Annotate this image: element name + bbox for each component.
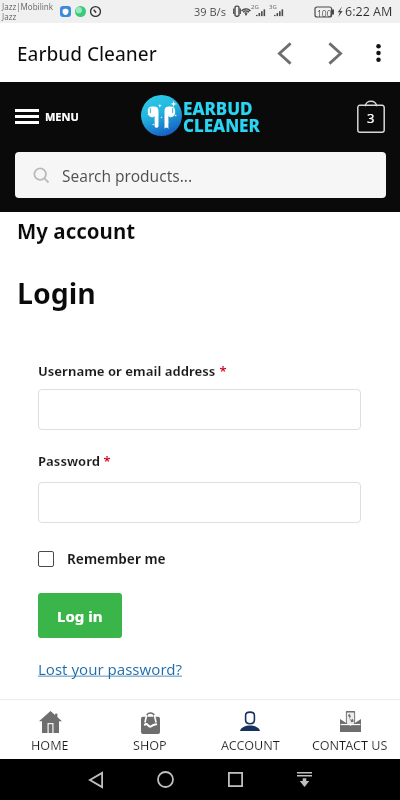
staticText: Search products... [62, 165, 193, 186]
button[interactable]: ACCOUNT [200, 700, 300, 759]
button[interactable]: MENU [15, 109, 79, 124]
staticText: CLEANER [183, 114, 260, 137]
staticText: SHOP [133, 737, 167, 754]
staticText: My account [17, 217, 136, 245]
button[interactable]: Hide navigation bar [282, 759, 326, 800]
staticText: Jazz [2, 11, 17, 22]
button[interactable] [38, 389, 361, 430]
staticText: MENU [45, 109, 79, 124]
staticText: Login [17, 274, 96, 313]
staticText: 6:22 AM [345, 3, 393, 20]
button[interactable]: More options [359, 34, 397, 72]
staticText: 100 [317, 8, 332, 20]
button[interactable] [38, 482, 361, 523]
button[interactable]: Cart, 3 items [352, 98, 389, 135]
staticText: CONTACT US [312, 737, 388, 754]
staticText: Jazz|Mobilink [2, 1, 54, 12]
staticText: * [216, 362, 227, 380]
button[interactable]: CONTACT US [300, 700, 400, 759]
staticText: 39 B/s [194, 4, 226, 19]
staticText: HOME [31, 737, 69, 754]
button[interactable]: Remember me [38, 550, 166, 568]
button[interactable]: Back [74, 759, 118, 800]
staticText: EARBUD [183, 97, 253, 120]
button[interactable]: Back [266, 34, 304, 72]
staticText: 3 [367, 109, 375, 127]
button[interactable]: Forward [316, 34, 354, 72]
button[interactable]: Lost your password? [38, 659, 183, 679]
button[interactable]: Search products... [15, 152, 386, 198]
staticText: ACCOUNT [221, 737, 280, 754]
staticText: Password [38, 452, 100, 470]
button[interactable]: Recent apps [213, 759, 257, 800]
staticText: 3G [269, 3, 277, 11]
staticText: Earbud Cleaner [17, 41, 157, 67]
staticText: 2G [251, 3, 259, 11]
button[interactable]: Home [143, 759, 187, 800]
staticText: Username or email address [38, 362, 216, 380]
button[interactable]: HOME [0, 700, 100, 759]
staticText: Log in [57, 606, 103, 626]
staticText: Remember me [67, 550, 166, 568]
staticText: * [100, 452, 111, 470]
button[interactable]: Log in [38, 593, 122, 638]
button[interactable]: SHOP [100, 700, 200, 759]
